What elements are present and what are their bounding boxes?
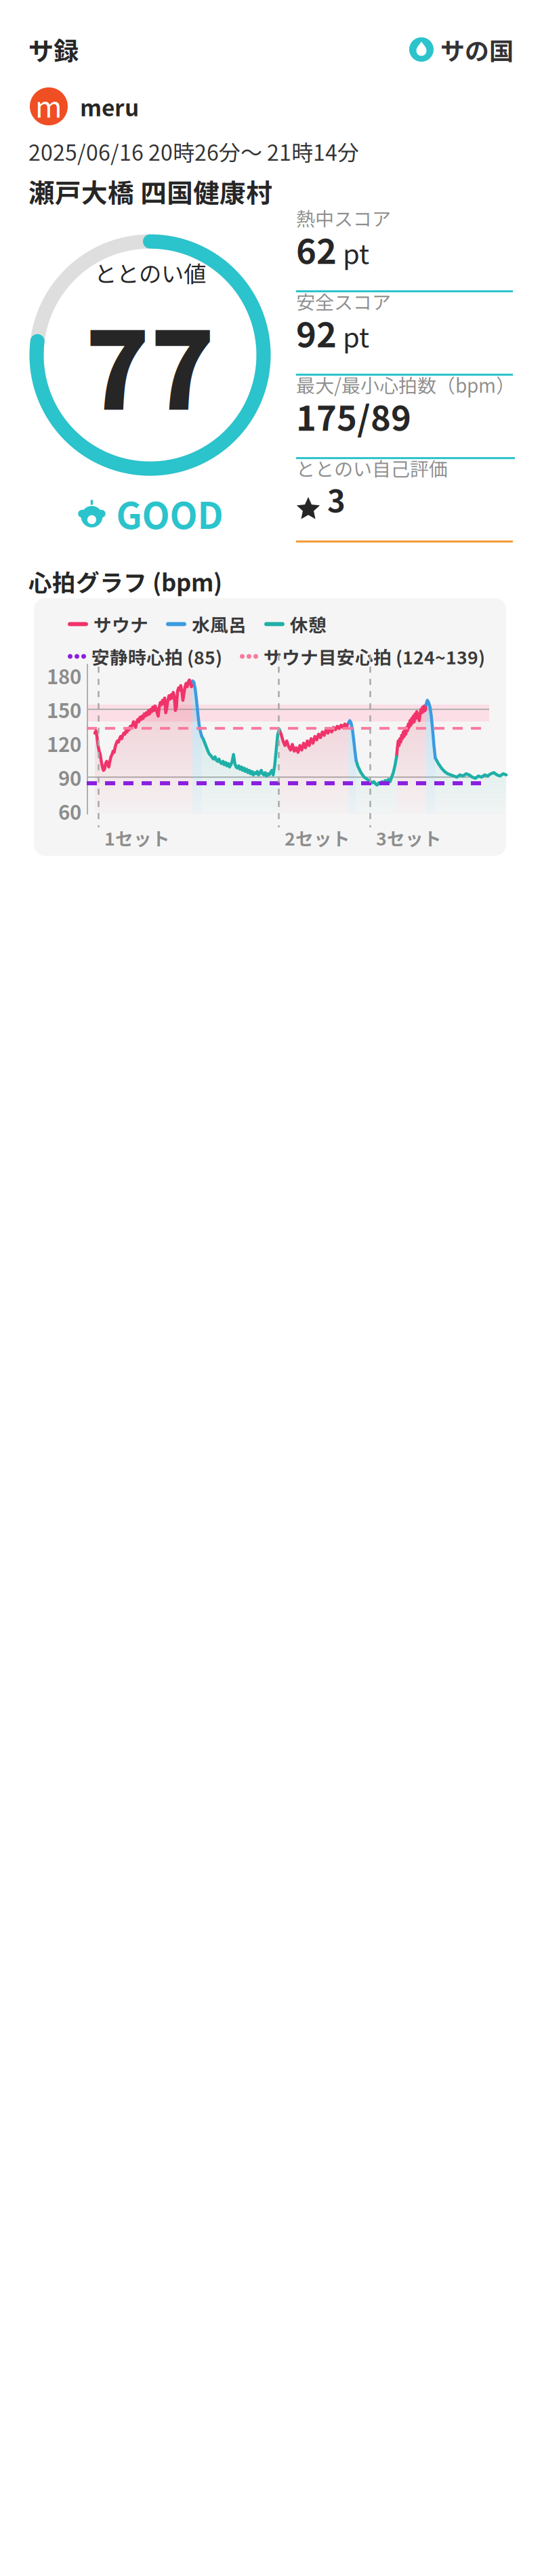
staticText: pt <box>337 233 369 272</box>
staticText: meru <box>80 90 139 123</box>
staticText: 90 <box>58 763 81 792</box>
staticText: 熱中スコア <box>296 204 391 231</box>
staticText: m <box>35 84 62 126</box>
staticText: 175/89 <box>296 391 411 441</box>
staticText: 60 <box>58 797 81 825</box>
staticText: 最大/最小心拍数（bpm） <box>296 371 515 398</box>
staticText: サ録 <box>28 31 79 68</box>
staticText: 62 <box>296 224 337 274</box>
staticText: GOOD <box>116 487 223 539</box>
staticText: 150 <box>47 695 81 724</box>
staticText: 安全スコア <box>296 287 391 315</box>
staticText: 水風呂 <box>192 611 247 637</box>
staticText: 2セット <box>285 825 350 851</box>
staticText: 1セット <box>104 825 170 851</box>
staticText: 心拍グラフ (bpm) <box>28 564 222 598</box>
staticText: サウナ <box>93 611 148 637</box>
staticText: pt <box>337 316 369 355</box>
staticText: サの国 <box>440 32 514 67</box>
staticText: 92 <box>296 307 337 357</box>
staticText: 120 <box>47 729 81 758</box>
staticText: 2025/06/16 20時26分〜 21時14分 <box>28 135 359 167</box>
staticText: 休憩 <box>290 611 327 637</box>
staticText: 77 <box>85 286 215 440</box>
staticText: 180 <box>47 661 81 690</box>
staticText: ととのい自己評価 <box>296 454 448 482</box>
staticText: サウナ目安心拍 (124~139) <box>264 643 485 669</box>
button[interactable]: サの国 <box>409 32 514 67</box>
staticText: 3セット <box>376 825 442 851</box>
staticText: 瀬戸大橋 四国健康村 <box>28 172 272 210</box>
staticText: 3 <box>320 477 346 521</box>
staticText: ととのい値 <box>94 256 206 289</box>
staticText: 安静時心拍 (85) <box>91 643 222 669</box>
